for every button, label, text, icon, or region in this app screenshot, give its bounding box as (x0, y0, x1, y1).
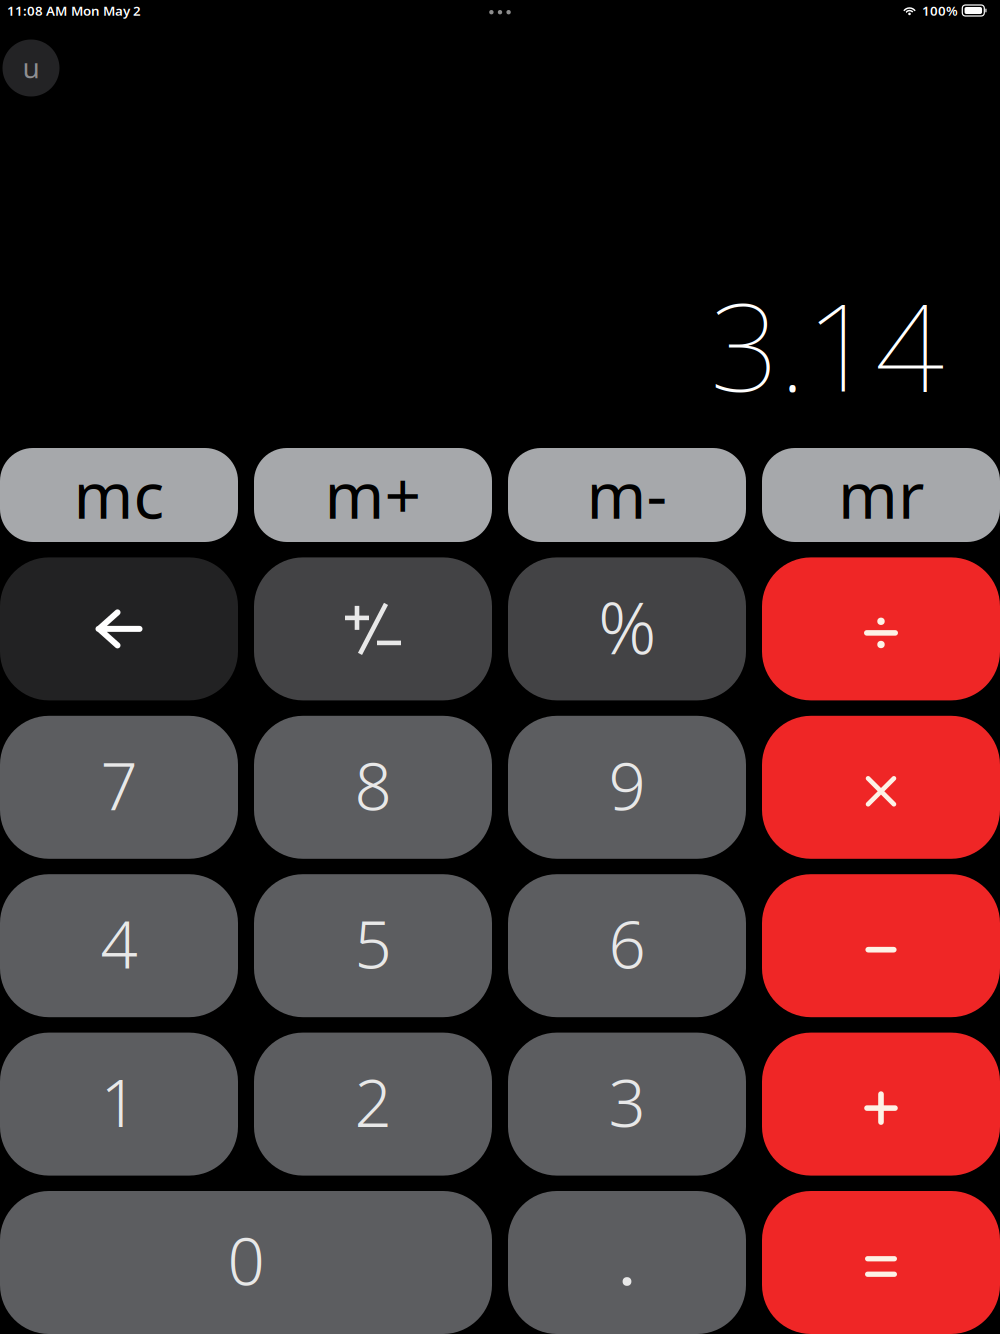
staticText: % (598, 579, 656, 674)
button[interactable]: Backspace (0, 557, 238, 700)
button[interactable]: 1 (0, 1033, 238, 1176)
button[interactable]: Minus (762, 874, 1000, 1017)
button[interactable]: 4 (0, 874, 238, 1017)
staticText: mr (838, 451, 924, 536)
staticText: m+ (324, 451, 421, 536)
button[interactable]: Account (0, 39, 62, 96)
staticText: 11:08 AM (7, 2, 67, 19)
staticText: 4 (100, 900, 137, 987)
button[interactable]: 6 (508, 874, 746, 1017)
button[interactable]: 9 (508, 716, 746, 859)
button[interactable]: m- (508, 448, 746, 542)
staticText: 1 (100, 1058, 137, 1145)
button[interactable]: Equals (762, 1191, 1000, 1334)
button[interactable]: 5 (254, 874, 492, 1017)
staticText: 3 (608, 1058, 645, 1145)
button[interactable]: Decimal point (508, 1191, 746, 1334)
button[interactable]: 7 (0, 716, 238, 859)
staticText: 3.14 (710, 264, 944, 425)
button[interactable]: mr (762, 448, 1000, 542)
staticText: 6 (608, 900, 645, 987)
button[interactable]: 8 (254, 716, 492, 859)
button[interactable]: 3 (508, 1033, 746, 1176)
staticText: 5 (354, 900, 391, 987)
staticText: mc (73, 451, 164, 536)
button[interactable]: Plus or minus (254, 557, 492, 700)
button[interactable]: mc (0, 448, 238, 542)
button[interactable]: m+ (254, 448, 492, 542)
button[interactable]: 2 (254, 1033, 492, 1176)
staticText: m- (586, 451, 667, 536)
staticText: 0 (227, 1217, 264, 1303)
button[interactable]: 0 (0, 1191, 492, 1334)
button[interactable]: Divide (762, 557, 1000, 700)
button[interactable]: % (508, 557, 746, 700)
staticText: 8 (354, 741, 391, 828)
button[interactable]: Multiply (762, 716, 1000, 859)
staticText: 2 (354, 1058, 391, 1145)
staticText: 100% (922, 2, 958, 19)
staticText: 7 (100, 741, 137, 828)
staticText: Mon May 2 (71, 2, 141, 19)
staticText: u (22, 49, 39, 86)
staticText: 9 (608, 741, 645, 828)
button[interactable]: Plus (762, 1033, 1000, 1176)
